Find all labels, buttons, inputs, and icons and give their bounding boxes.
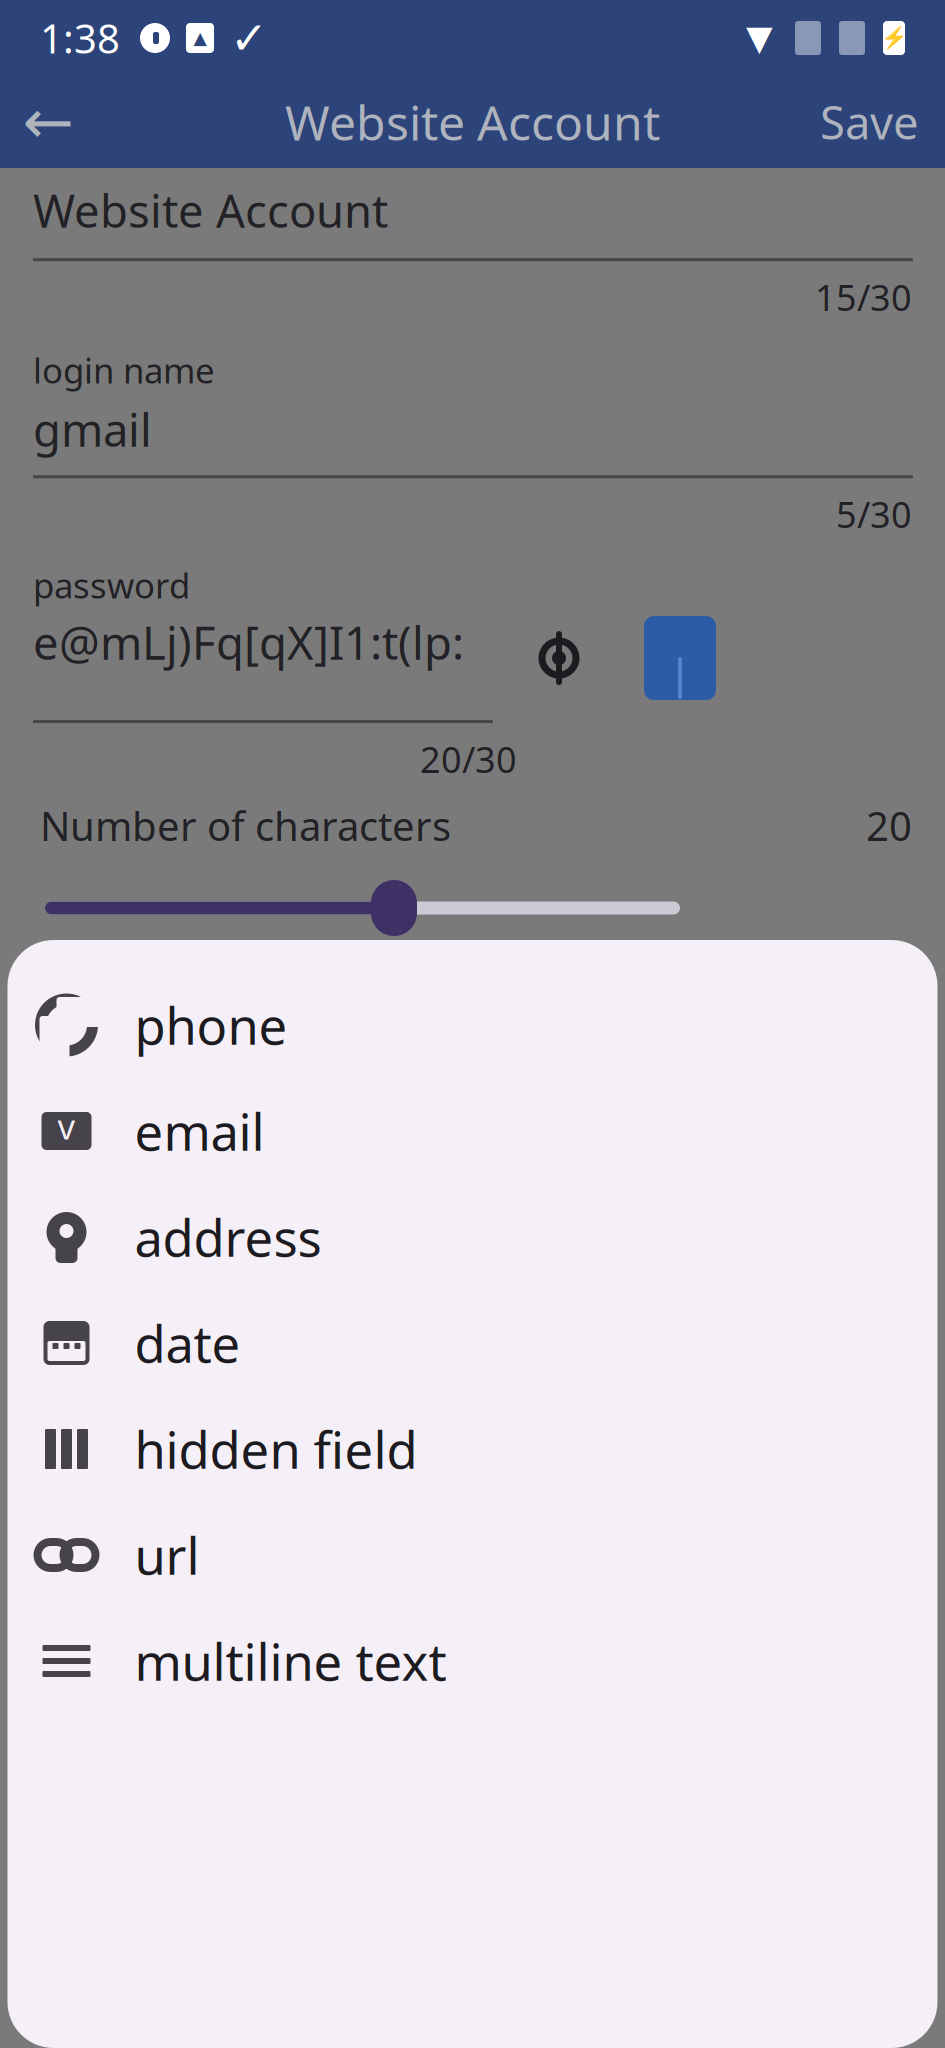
staticText: 5/30 — [836, 490, 912, 538]
button[interactable]: multiline text — [7, 1608, 937, 1714]
button[interactable]: Save — [794, 76, 945, 168]
button[interactable]: date — [7, 1290, 937, 1396]
staticText: ▼ — [746, 18, 773, 58]
button[interactable]: hidden field — [7, 1396, 937, 1502]
staticText: address — [134, 1203, 321, 1271]
button[interactable]: v — [7, 1078, 937, 1184]
staticText: date — [134, 1309, 240, 1377]
staticText: 15/30 — [815, 273, 912, 321]
staticText: ▲ — [193, 28, 206, 48]
button[interactable]: Show password — [528, 627, 590, 689]
staticText: phone — [134, 991, 287, 1059]
staticText: multiline text — [134, 1627, 446, 1695]
staticText: ← — [22, 87, 73, 157]
staticText: Save — [820, 92, 919, 152]
staticText: e@mLj)Fq[qX]I1:t(lp: — [33, 612, 464, 672]
staticText: Website Account — [33, 180, 388, 240]
button[interactable]: phone — [7, 972, 937, 1078]
button[interactable]: Back — [0, 76, 96, 168]
button[interactable]: Generate password — [636, 610, 724, 706]
staticText: 1:38 — [40, 11, 120, 64]
button[interactable]: url — [7, 1502, 937, 1608]
staticText: gmail — [33, 399, 152, 459]
staticText: Website Account — [285, 90, 660, 154]
staticText: Number of characters — [40, 799, 451, 852]
staticText: 20/30 — [420, 735, 517, 783]
staticText: email — [134, 1097, 264, 1165]
staticText: ✓ — [230, 12, 268, 64]
staticText: url — [134, 1521, 199, 1589]
staticText: v — [57, 1103, 75, 1149]
staticText: 20 — [866, 799, 912, 852]
staticText: hidden field — [134, 1415, 417, 1483]
staticText: password — [33, 562, 190, 608]
staticText: login name — [33, 347, 215, 393]
staticText: ⚡ — [880, 26, 907, 50]
button[interactable]: address — [7, 1184, 937, 1290]
